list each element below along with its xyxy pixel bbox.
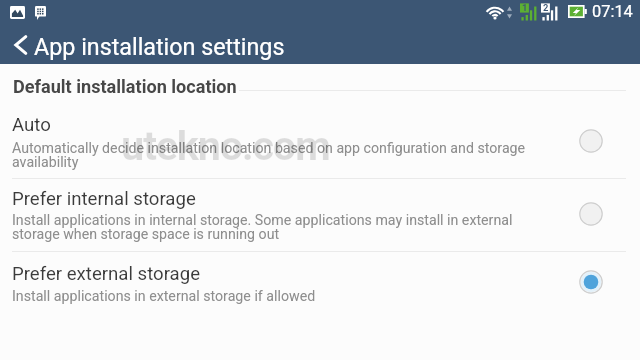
other: New message [35, 6, 46, 20]
staticText: Install applications in external storage… [12, 288, 316, 305]
button[interactable]: Prefer internal storage [0, 178, 640, 250]
other: Mobile signal SIM 2 [541, 3, 561, 22]
other: Screenshot captured [10, 6, 25, 19]
other: Battery charging [568, 5, 588, 20]
staticText: utekno.com [121, 121, 330, 170]
button[interactable]: Prefer external storage [0, 251, 640, 313]
staticText: 2 [543, 2, 549, 13]
staticText: 07:14 [592, 2, 633, 21]
staticText: App installation settings [34, 33, 285, 60]
staticText: 1 [522, 2, 528, 13]
staticText: Prefer internal storage [12, 188, 196, 210]
staticText: Auto [12, 114, 51, 136]
button[interactable]: Auto [0, 104, 640, 177]
staticText: Prefer external storage [12, 263, 201, 285]
staticText: Install applications in internal storage… [12, 212, 542, 243]
staticText: Default installation location [13, 76, 237, 97]
other: Mobile signal SIM 1 [520, 3, 540, 22]
staticText: Automatically decide installation locati… [12, 140, 542, 171]
button[interactable]: Back [0, 24, 640, 64]
other: Wi-Fi connected [485, 3, 505, 20]
